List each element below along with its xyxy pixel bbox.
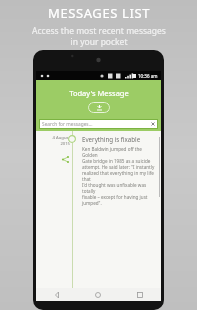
staticText: Access the most recent messages in your … (32, 25, 166, 47)
staticText: 10:36 am (138, 73, 158, 79)
staticText: Everything is fixable (82, 135, 141, 143)
button[interactable]: Share (60, 154, 70, 164)
button[interactable]: Download today's message (88, 102, 110, 113)
staticText: 2015 (60, 141, 70, 147)
button[interactable]: Home (77, 288, 119, 301)
staticText: MESSAGES LIST (48, 4, 150, 22)
staticText: Ken Baldwin jumped off the Golden Gate b… (82, 146, 156, 206)
other: Clear search (151, 122, 155, 126)
staticText: 4 August (52, 135, 70, 141)
staticText: Today's Message (69, 88, 129, 98)
button[interactable]: Search for messages... (42, 119, 155, 129)
button[interactable]: Recents (119, 288, 161, 301)
button[interactable]: 4 August (36, 131, 161, 288)
button[interactable]: Back (36, 288, 77, 301)
staticText: Search for messages... (42, 121, 93, 128)
